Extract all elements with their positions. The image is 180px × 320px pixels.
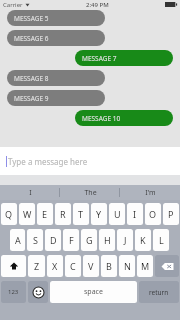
button[interactable]: MESSAGE 8 — [7, 70, 105, 86]
button[interactable]: E — [37, 203, 53, 225]
button[interactable]: I'm — [120, 185, 180, 200]
staticText: return — [149, 288, 169, 297]
button[interactable]: J — [117, 229, 133, 251]
staticText: K — [140, 234, 146, 246]
staticText: W — [23, 208, 32, 220]
button[interactable]: MESSAGE 9 — [7, 90, 105, 106]
button[interactable]: N — [119, 255, 135, 277]
button[interactable]: Z — [28, 255, 45, 277]
staticText: The — [84, 188, 97, 198]
button[interactable]: T — [73, 203, 89, 225]
staticText: G — [86, 234, 93, 246]
staticText: MESSAGE 10 — [82, 114, 121, 123]
staticText: Type a message here — [8, 156, 88, 167]
button[interactable]: L — [153, 229, 169, 251]
staticText: U — [114, 208, 121, 220]
staticText: S — [33, 234, 38, 246]
button[interactable]: MESSAGE 6 — [7, 30, 105, 46]
button[interactable]: Delete — [155, 255, 179, 277]
staticText: O — [149, 208, 157, 220]
staticText: F — [69, 234, 74, 246]
staticText: 123 — [8, 288, 19, 296]
button[interactable]: space — [50, 281, 137, 303]
staticText: 2:49 PM — [86, 1, 109, 9]
button[interactable]: P — [163, 203, 179, 225]
button[interactable]: U — [109, 203, 125, 225]
button[interactable]: O — [145, 203, 161, 225]
staticText: P — [168, 208, 174, 220]
button[interactable]: Q — [1, 203, 17, 225]
staticText: MESSAGE 8 — [14, 74, 49, 83]
staticText: MESSAGE 5 — [14, 14, 49, 23]
staticText: A — [15, 234, 21, 246]
button[interactable]: X — [47, 255, 63, 277]
button[interactable]: K — [135, 229, 151, 251]
staticText: I — [29, 188, 32, 198]
staticText: Carrier — [3, 1, 23, 9]
button[interactable]: R — [55, 203, 71, 225]
button[interactable]: B — [101, 255, 117, 277]
staticText: B — [106, 260, 112, 272]
button[interactable]: F — [63, 229, 79, 251]
button[interactable]: MESSAGE 5 — [7, 10, 105, 26]
staticText: MESSAGE 9 — [14, 94, 49, 103]
staticText: I — [133, 208, 137, 220]
staticText: Y — [96, 208, 102, 220]
staticText: M — [141, 260, 150, 272]
button[interactable]: 123 — [1, 281, 26, 303]
staticText: N — [124, 260, 131, 272]
staticText: X — [52, 260, 58, 272]
staticText: Q — [5, 208, 13, 220]
button[interactable]: MESSAGE 10 — [75, 110, 173, 126]
button[interactable]: D — [45, 229, 61, 251]
staticText: I'm — [145, 188, 156, 198]
button[interactable]: M — [137, 255, 153, 277]
staticText: J — [124, 234, 127, 246]
button[interactable]: return — [139, 281, 179, 303]
button[interactable]: Type a message here — [0, 147, 180, 175]
staticText: Z — [34, 260, 40, 272]
button[interactable]: Shift — [1, 255, 26, 277]
button[interactable]: I — [0, 185, 60, 200]
button[interactable]: V — [83, 255, 99, 277]
staticText: H — [104, 234, 111, 246]
button[interactable]: Emoji keyboard — [28, 281, 48, 303]
staticText: E — [42, 208, 48, 220]
button[interactable]: S — [27, 229, 43, 251]
staticText: MESSAGE 7 — [82, 54, 117, 63]
button[interactable]: The — [60, 185, 120, 200]
button[interactable]: C — [65, 255, 81, 277]
button[interactable]: W — [19, 203, 35, 225]
staticText: C — [70, 260, 76, 272]
staticText: V — [88, 260, 94, 272]
staticText: T — [78, 208, 84, 220]
button[interactable]: MESSAGE 7 — [75, 50, 173, 66]
staticText: R — [60, 208, 66, 220]
staticText: space — [84, 287, 103, 297]
button[interactable]: Y — [91, 203, 107, 225]
button[interactable]: A — [10, 229, 25, 251]
button[interactable]: G — [81, 229, 97, 251]
staticText: L — [159, 234, 164, 246]
staticText: MESSAGE 6 — [14, 34, 49, 43]
staticText: D — [50, 234, 57, 246]
button[interactable]: H — [99, 229, 115, 251]
button[interactable]: I — [127, 203, 143, 225]
